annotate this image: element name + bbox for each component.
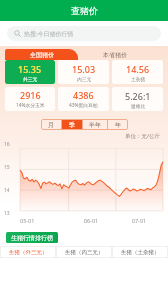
staticText: 外三元 — [23, 76, 38, 82]
staticText: 13 — [4, 210, 10, 217]
button[interactable]: 生猪（内三元） — [56, 246, 112, 258]
button[interactable]: 全国猪价 — [5, 49, 78, 60]
staticText: 14.56 — [126, 63, 150, 75]
staticText: 16 — [4, 141, 10, 148]
staticText: 15 — [4, 164, 10, 171]
button[interactable]: 2916 — [5, 87, 55, 111]
button[interactable]: 15.35 — [5, 60, 55, 84]
other: Search — [14, 30, 21, 37]
staticText: 15.03 — [72, 63, 96, 75]
staticText: 本省猪价 — [103, 51, 127, 59]
button[interactable]: 生猪行情排行榜 — [6, 232, 58, 243]
staticText: 43%蛋白豆粕 — [69, 102, 98, 109]
staticText: 月 — [48, 121, 54, 129]
staticText: 年 — [115, 121, 121, 129]
staticText: 07-01 — [115, 217, 163, 224]
button[interactable]: 14.56 — [112, 60, 163, 84]
button[interactable]: 4386 — [58, 87, 109, 111]
staticText: 季 — [69, 121, 75, 129]
staticText: 5.26:1 — [125, 90, 151, 102]
button[interactable]: 15.03 — [58, 60, 109, 84]
staticText: 生猪（外三元） — [9, 249, 48, 256]
staticText: 热搜:今日猪价行情 — [24, 30, 74, 38]
staticText: 生猪行情排行榜 — [11, 234, 53, 242]
button[interactable]: 5.26:1 — [112, 87, 163, 111]
button[interactable]: 生猪（土杂猪） — [112, 246, 168, 258]
staticText: 半年 — [89, 121, 101, 129]
button[interactable]: 季 — [62, 119, 82, 130]
button[interactable]: 年 — [108, 119, 128, 130]
staticText: 2916 — [20, 89, 41, 101]
button[interactable]: 半年 — [83, 119, 107, 130]
staticText: 猪粮比 — [131, 103, 146, 109]
staticText: 06-01 — [67, 217, 115, 224]
button[interactable]: Search — [7, 26, 161, 41]
button[interactable]: 月 — [41, 119, 61, 130]
staticText: 单位：元/公斤 — [125, 132, 161, 140]
button[interactable]: 生猪（外三元） — [0, 246, 56, 258]
staticText: 4386 — [73, 89, 94, 101]
staticText: 查猪价 — [71, 5, 98, 16]
staticText: 生猪（内三元） — [65, 249, 104, 256]
staticText: 14%水分玉米 — [16, 102, 45, 109]
button[interactable]: 本省猪价 — [78, 49, 151, 60]
staticText: 14 — [4, 187, 10, 194]
staticText: 内三元 — [77, 76, 92, 82]
staticText: 土杂猪 — [131, 76, 146, 82]
staticText: 05-01 — [20, 217, 67, 224]
staticText: 全国猪价 — [30, 51, 54, 59]
staticText: 15.35 — [18, 63, 42, 75]
staticText: 生猪（土杂猪） — [121, 249, 160, 256]
